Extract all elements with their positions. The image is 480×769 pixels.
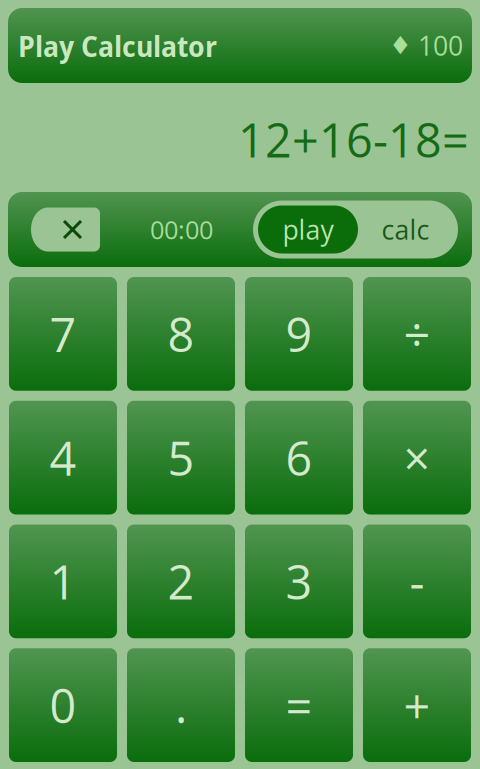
- button[interactable]: 6: [245, 401, 353, 515]
- staticText: 6: [285, 426, 312, 489]
- button[interactable]: -: [363, 524, 471, 638]
- staticText: 3: [285, 550, 312, 613]
- button[interactable]: +: [363, 648, 471, 762]
- button[interactable]: ÷: [363, 277, 471, 391]
- staticText: ♦: [389, 31, 412, 60]
- staticText: 00:00: [150, 212, 213, 247]
- staticText: calc: [381, 211, 429, 248]
- staticText: 2: [167, 550, 194, 613]
- staticText: 100: [418, 27, 463, 64]
- button[interactable]: 3: [245, 524, 353, 638]
- button[interactable]: 5: [127, 401, 235, 515]
- staticText: .: [175, 673, 187, 737]
- button[interactable]: 8: [127, 277, 235, 391]
- staticText: 5: [167, 426, 194, 489]
- staticText: 1: [49, 550, 76, 613]
- button[interactable]: =: [245, 648, 353, 762]
- button[interactable]: 2: [127, 524, 235, 638]
- staticText: 8: [167, 302, 194, 366]
- staticText: -: [409, 550, 424, 613]
- staticText: 0: [49, 673, 76, 737]
- button[interactable]: 4: [9, 401, 117, 515]
- staticText: 4: [49, 426, 76, 489]
- button[interactable]: 0: [9, 648, 117, 762]
- staticText: 9: [285, 302, 312, 366]
- button[interactable]: 1: [9, 524, 117, 638]
- button[interactable]: .: [127, 648, 235, 762]
- staticText: 12+16-18=: [238, 108, 469, 171]
- staticText: ×: [403, 426, 430, 489]
- button[interactable]: 7: [9, 277, 117, 391]
- staticText: 7: [49, 302, 76, 366]
- staticText: =: [285, 673, 312, 737]
- staticText: ÷: [403, 302, 430, 366]
- button[interactable]: ×: [363, 401, 471, 515]
- button[interactable]: 9: [245, 277, 353, 391]
- staticText: Play Calculator: [18, 25, 217, 65]
- staticText: +: [403, 673, 430, 737]
- button[interactable]: play: [258, 205, 358, 253]
- button[interactable]: calc: [358, 205, 453, 253]
- staticText: play: [282, 211, 333, 248]
- button[interactable]: Clear: [31, 207, 100, 251]
